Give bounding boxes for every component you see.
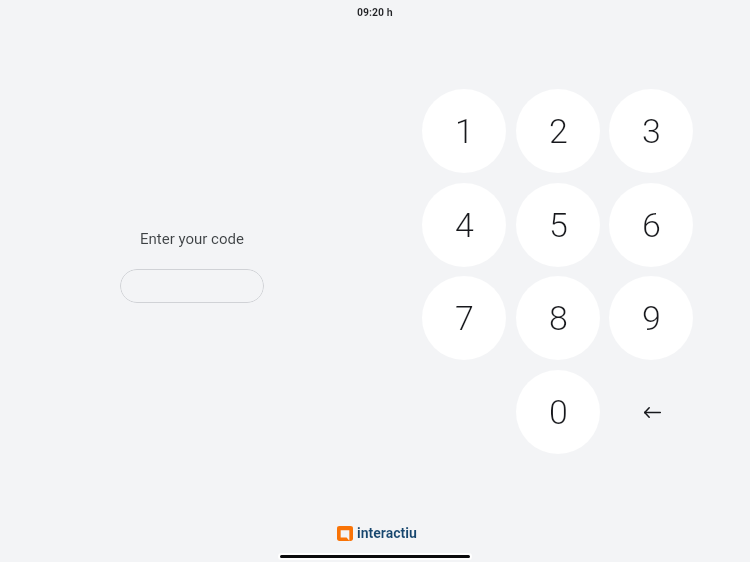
button[interactable]: 0 — [516, 370, 600, 454]
staticText: Enter your code — [140, 230, 244, 248]
button[interactable]: 5 — [516, 183, 600, 267]
button[interactable]: Delete — [609, 370, 693, 454]
button[interactable]: Code input field — [120, 269, 264, 303]
button[interactable]: 2 — [516, 89, 600, 173]
staticText: 2 — [549, 111, 568, 151]
button[interactable]: 4 — [422, 183, 506, 267]
button[interactable]: 8 — [516, 276, 600, 360]
button[interactable]: 3 — [609, 89, 693, 173]
button[interactable]: 1 — [422, 89, 506, 173]
button[interactable]: 9 — [609, 276, 693, 360]
button[interactable]: interactiu — [337, 525, 417, 541]
staticText: 6 — [642, 205, 661, 245]
staticText: 9 — [642, 298, 661, 338]
staticText: 0 — [549, 392, 568, 432]
button[interactable]: 6 — [609, 183, 693, 267]
staticText: 4 — [455, 205, 474, 245]
staticText: 5 — [549, 205, 568, 245]
staticText: 09:20 h — [357, 6, 393, 18]
staticText: interactiu — [357, 525, 417, 541]
staticText: 3 — [642, 111, 661, 151]
staticText: 8 — [549, 298, 568, 338]
staticText: 1 — [455, 111, 474, 151]
button[interactable]: 7 — [422, 276, 506, 360]
staticText: 7 — [455, 298, 474, 338]
